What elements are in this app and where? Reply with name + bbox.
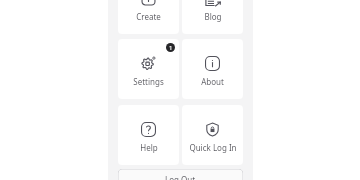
button[interactable]: Help	[118, 105, 179, 165]
staticText: Settings	[133, 76, 164, 87]
staticText: About	[201, 76, 224, 87]
staticText: Blog	[204, 11, 222, 22]
button[interactable]: Create	[118, 0, 179, 34]
staticText: Create	[136, 11, 161, 22]
staticText: Quick Log In	[189, 142, 237, 153]
button[interactable]: Log Out	[118, 169, 243, 180]
button[interactable]: Blog	[182, 0, 243, 34]
button[interactable]: Quick Log In	[182, 105, 243, 165]
staticText: 1	[169, 44, 173, 52]
button[interactable]: Settings	[118, 39, 179, 99]
staticText: Log Out	[165, 174, 196, 180]
button[interactable]: About	[182, 39, 243, 99]
staticText: Help	[140, 142, 158, 153]
